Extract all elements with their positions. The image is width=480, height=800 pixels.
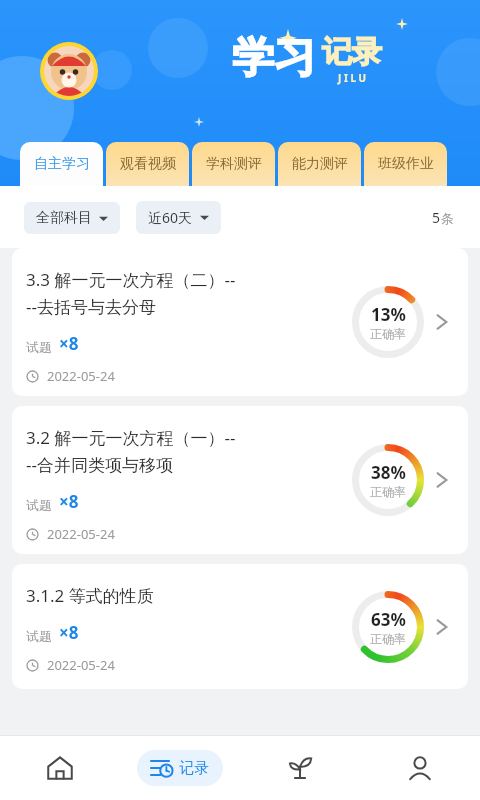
staticText: 班级作业 (378, 155, 434, 173)
staticText: ×8 (59, 332, 79, 355)
staticText: 试题 (26, 339, 52, 355)
staticText: ×8 (59, 490, 79, 513)
button[interactable]: Home (0, 736, 120, 800)
button[interactable]: 能力测评 (278, 142, 361, 186)
button[interactable]: 3.2 解一元一次方程（一）-- --合并同类项与移项 (12, 406, 468, 554)
staticText: 记录 (322, 33, 382, 71)
staticText: 2022-05-24 (47, 367, 115, 385)
button[interactable]: Open detail (430, 310, 454, 334)
staticText: 学习 (232, 32, 316, 85)
button[interactable]: Profile (360, 736, 480, 800)
staticText: 试题 (26, 497, 52, 513)
staticText: 3.3 解一元一次方程（二）-- --去括号与去分母 (26, 268, 236, 318)
button[interactable]: 近60天 (136, 201, 221, 234)
staticText: 学科测评 (206, 155, 262, 173)
staticText: 试题 (26, 628, 52, 644)
button[interactable]: 记录 (137, 750, 223, 786)
button[interactable]: Growth (240, 736, 360, 800)
staticText: 条 (441, 210, 454, 226)
button[interactable]: 自主学习 (20, 142, 103, 186)
staticText: 38% (371, 461, 406, 484)
staticText: 63% (371, 608, 406, 631)
staticText: 13% (371, 303, 406, 326)
staticText: 全部科目 (36, 209, 92, 227)
staticText: 2022-05-24 (47, 525, 115, 543)
staticText: 记录 (179, 759, 209, 778)
button[interactable]: Open detail (430, 468, 454, 492)
button[interactable]: 3.3 解一元一次方程（二）-- --去括号与去分母 (12, 248, 468, 396)
button[interactable]: 全部科目 (24, 202, 120, 234)
staticText: 正确率 (370, 326, 406, 341)
staticText: 3.1.2 等式的性质 (26, 584, 154, 607)
staticText: 能力测评 (292, 155, 348, 173)
button[interactable]: 学科测评 (192, 142, 275, 186)
staticText: ×8 (59, 621, 79, 644)
button[interactable]: 观看视频 (106, 142, 189, 186)
staticText: 观看视频 (120, 155, 176, 173)
button[interactable]: Open detail (430, 615, 454, 639)
staticText: 近60天 (148, 208, 193, 227)
staticText: 自主学习 (34, 155, 90, 173)
staticText: 正确率 (370, 484, 406, 499)
staticText: J I L U (338, 71, 367, 85)
staticText: 2022-05-24 (47, 656, 115, 674)
staticText: 3.2 解一元一次方程（一）-- --合并同类项与移项 (26, 426, 236, 476)
button[interactable]: 3.1.2 等式的性质 (12, 564, 468, 689)
staticText: 5 (432, 208, 441, 227)
button[interactable]: 班级作业 (364, 142, 447, 186)
button[interactable]: Avatar (40, 42, 98, 100)
staticText: 正确率 (370, 631, 406, 646)
